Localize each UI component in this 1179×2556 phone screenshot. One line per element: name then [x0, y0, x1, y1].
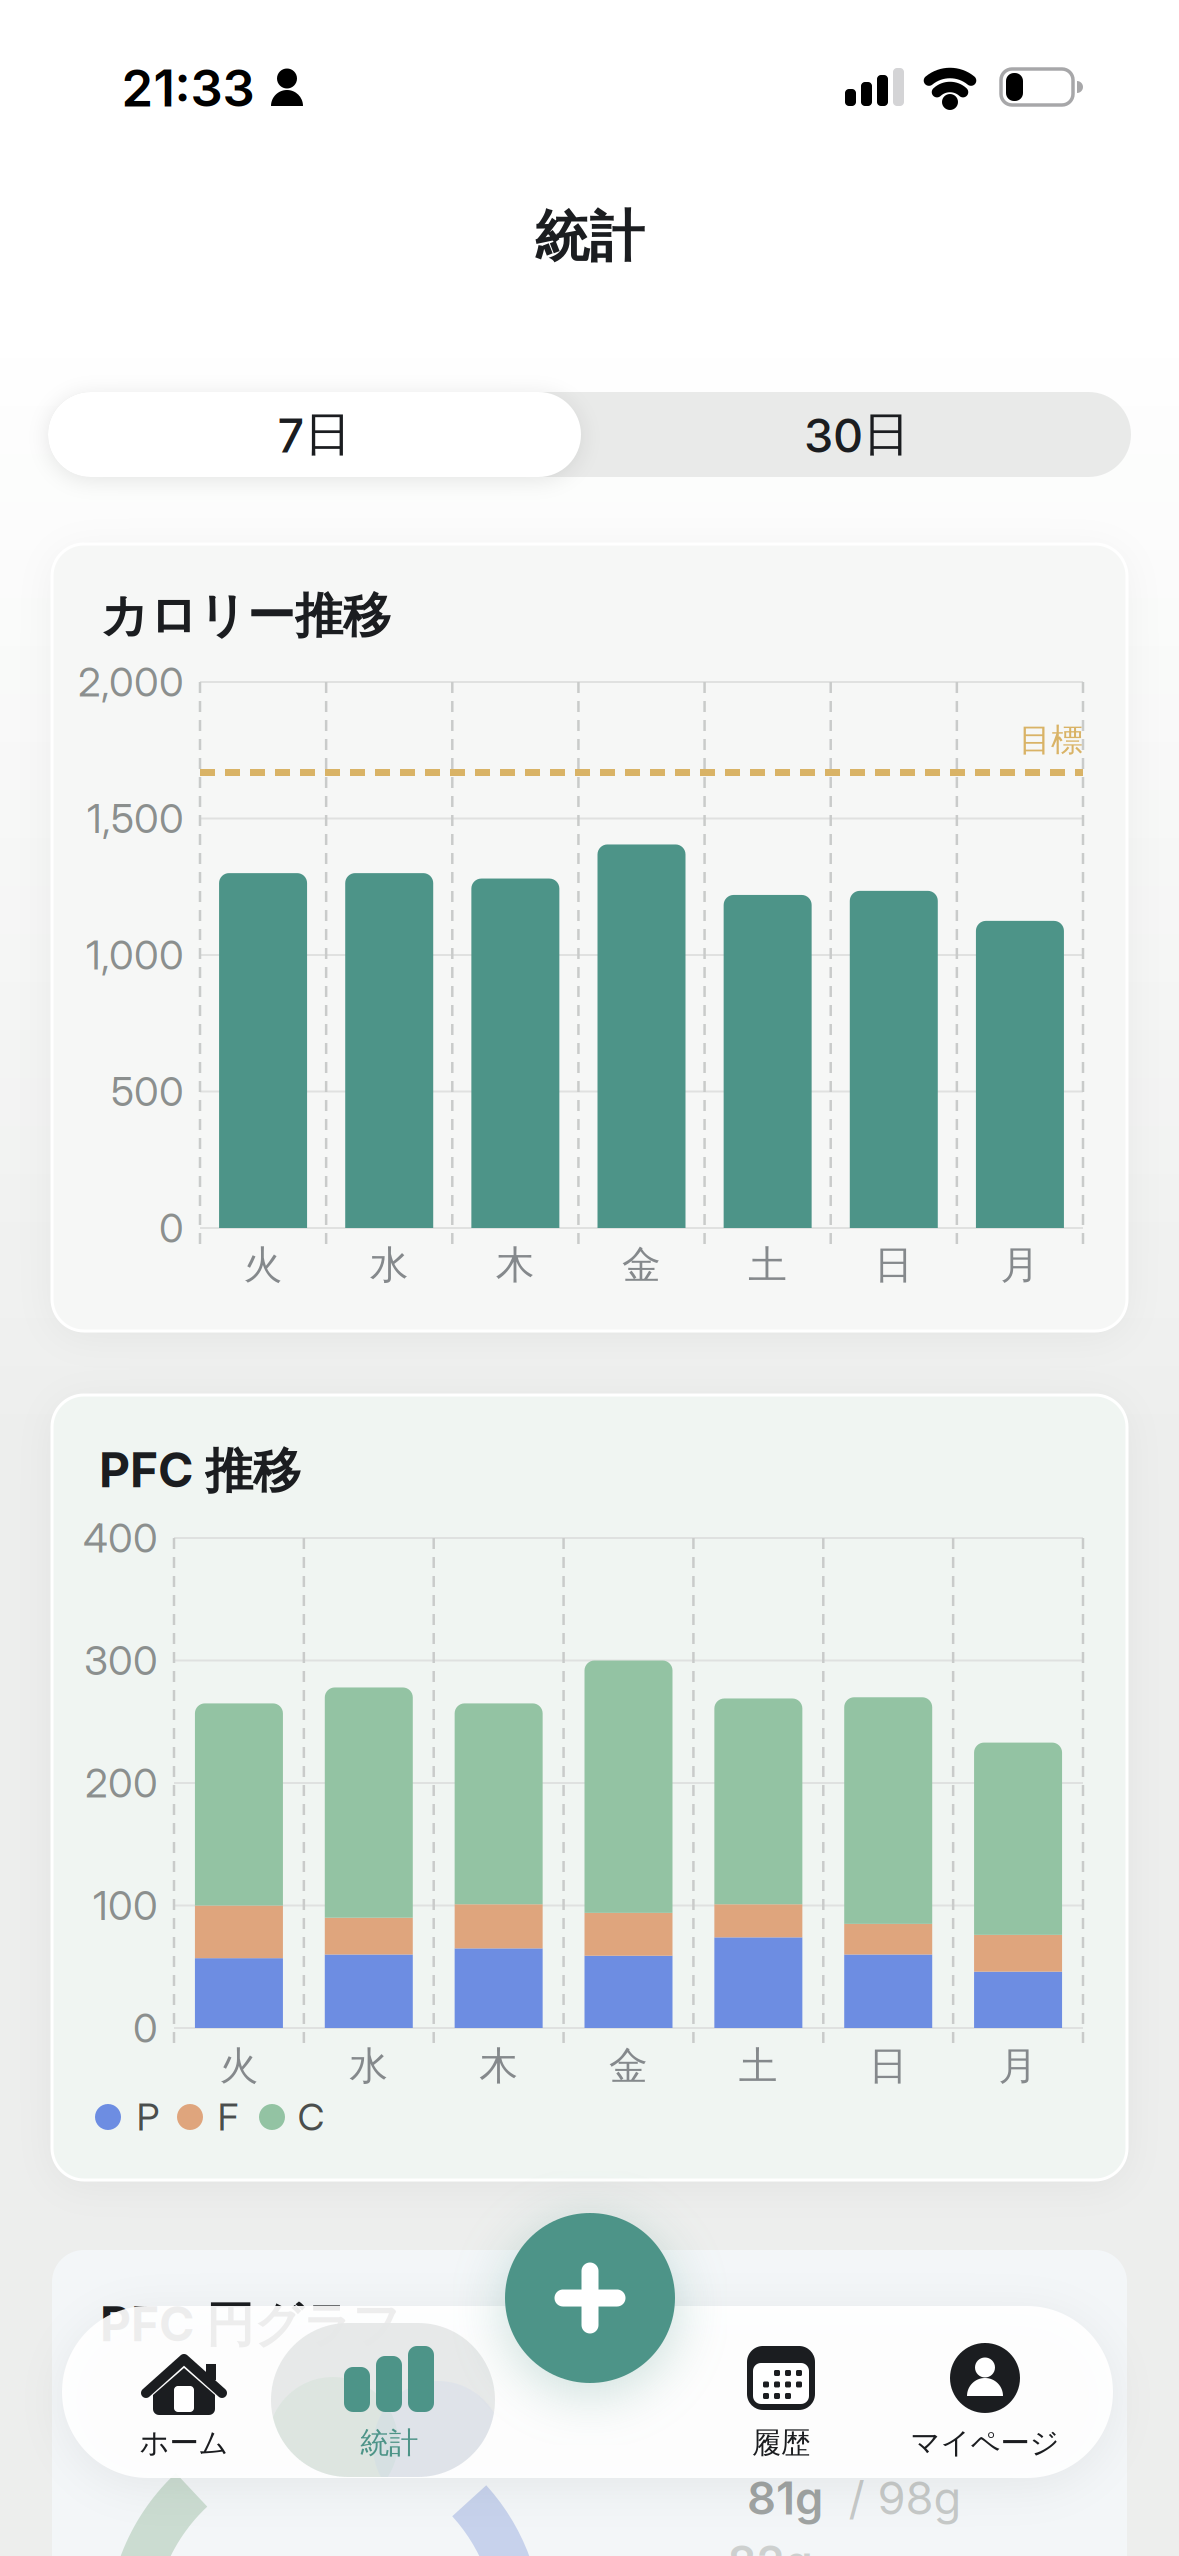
staticText: 統計	[534, 203, 644, 270]
staticText: / 98g	[848, 2471, 961, 2525]
staticText: 木	[479, 2042, 518, 2090]
staticText: 日	[874, 1241, 913, 1289]
staticText: 7日	[277, 406, 351, 463]
staticText: 統計	[360, 2425, 418, 2461]
button[interactable]: ホーム	[54, 2320, 314, 2480]
staticText: F	[217, 2095, 238, 2139]
button[interactable]: マイページ	[855, 2320, 1115, 2480]
staticText: 金	[609, 2042, 648, 2090]
staticText: 400	[83, 1514, 158, 1562]
staticText: 0	[159, 1204, 184, 1252]
staticText: 金	[622, 1241, 661, 1289]
staticText: 月	[1000, 1241, 1039, 1289]
staticText: 82g	[727, 2535, 812, 2556]
staticText: 水	[349, 2042, 388, 2090]
staticText: 1,500	[87, 795, 184, 842]
button[interactable]: 7日	[48, 392, 581, 477]
staticText: 履歴	[752, 2425, 810, 2461]
staticText: 土	[739, 2042, 778, 2090]
button[interactable]: 履歴	[651, 2320, 911, 2480]
staticText: 水	[370, 1241, 409, 1289]
staticText: ホーム	[139, 2425, 228, 2461]
button[interactable]: 追加	[505, 2213, 675, 2383]
staticText: 木	[496, 1241, 535, 1289]
staticText: 1,000	[86, 931, 184, 979]
staticText: C	[297, 2095, 324, 2139]
staticText: 月	[999, 2042, 1038, 2090]
staticText: 0	[133, 2004, 158, 2052]
staticText: 土	[748, 1241, 787, 1289]
staticText: P	[136, 2095, 159, 2139]
staticText: 21:33	[121, 58, 254, 118]
staticText: 81g	[747, 2471, 823, 2525]
staticText: 火	[244, 1241, 283, 1289]
staticText: 日	[869, 2042, 908, 2090]
staticText: 2,000	[78, 658, 184, 706]
staticText: 100	[93, 1882, 158, 1929]
staticText: PFC 推移	[99, 1441, 301, 1501]
staticText: 火	[219, 2042, 258, 2090]
staticText: 200	[85, 1759, 158, 1807]
staticText: 300	[84, 1637, 158, 1684]
staticText: 30日	[804, 406, 910, 463]
staticText: マイページ	[910, 2425, 1059, 2461]
button[interactable]: 統計	[259, 2320, 519, 2480]
button[interactable]: 30日	[607, 392, 1107, 477]
staticText: カロリー推移	[100, 586, 391, 645]
staticText: PFC 円グラフ	[100, 2295, 401, 2355]
staticText: 目標	[1019, 720, 1083, 760]
staticText: 500	[111, 1068, 184, 1115]
